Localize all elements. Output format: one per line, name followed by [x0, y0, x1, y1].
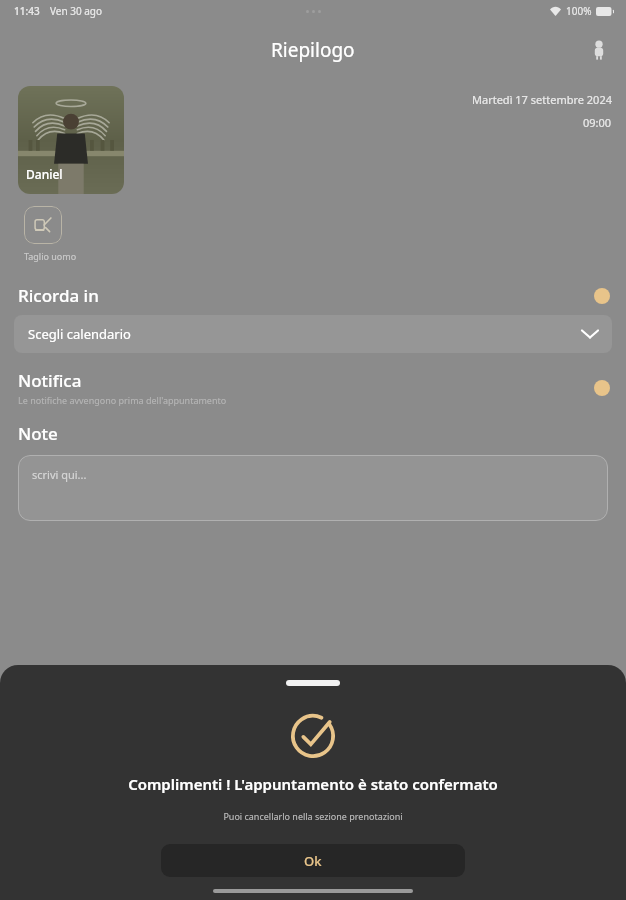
staticText: scrivi qui...	[32, 467, 87, 482]
staticText: Complimenti ! L'appuntamento è stato con…	[128, 774, 498, 794]
staticText: Le notifiche avvengono prima dell'appunt…	[18, 394, 227, 406]
button[interactable]: Ok	[161, 844, 465, 877]
button[interactable]: Taglio uomo	[24, 206, 77, 262]
staticText: Taglio uomo	[24, 250, 77, 262]
button[interactable]: Daniel	[18, 86, 124, 194]
staticText: Puoi cancellarlo nella sezione prenotazi…	[223, 810, 403, 822]
staticText: Note	[18, 422, 58, 445]
button[interactable]: Scegli calendario	[14, 315, 612, 353]
staticText: 09:00	[583, 115, 612, 130]
button[interactable]: scrivi qui...	[18, 455, 608, 521]
staticText: Ven 30 ago	[50, 4, 103, 18]
button[interactable]: Attiva opzione	[576, 286, 610, 306]
button[interactable]: Profilo	[582, 33, 616, 67]
staticText: Ricorda in	[18, 284, 99, 307]
button[interactable]: Attiva opzione	[576, 378, 610, 398]
staticText: Daniel	[26, 166, 63, 182]
staticText: 11:43	[14, 4, 40, 18]
staticText: 100%	[566, 4, 592, 18]
staticText: Riepilogo	[271, 37, 355, 63]
staticText: Scegli calendario	[28, 325, 131, 343]
staticText: Notifica	[18, 369, 82, 392]
staticText: Ok	[304, 852, 322, 870]
staticText: Martedì 17 settembre 2024	[472, 92, 612, 107]
